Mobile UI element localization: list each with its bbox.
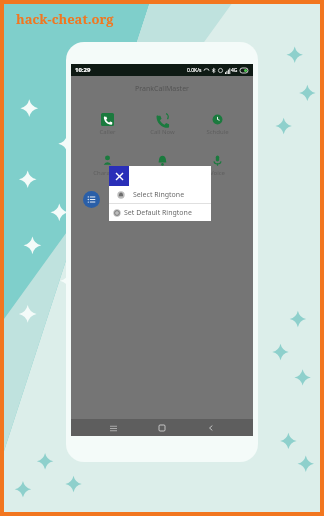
button[interactable]: Caller <box>79 111 135 138</box>
staticText: 10:29 <box>75 66 91 74</box>
button[interactable]: Home <box>155 421 169 435</box>
staticText: Caller <box>99 128 116 136</box>
button[interactable]: Back <box>204 421 218 435</box>
button[interactable]: Ringtone <box>135 152 190 179</box>
button[interactable]: Set Default Ringtone <box>109 204 211 221</box>
button[interactable]: Call log list <box>83 191 100 208</box>
button[interactable]: Select Ringtone <box>109 186 211 203</box>
staticText: 0.0K/s <box>187 67 202 74</box>
staticText: 4G <box>231 67 238 74</box>
staticText: PrankCallMaster <box>71 84 253 94</box>
button[interactable]: Character <box>79 152 135 179</box>
button[interactable]: Close <box>109 166 129 186</box>
staticText: Set Default Ringtone <box>124 208 192 218</box>
staticText: hack-cheat.org <box>16 10 114 28</box>
staticText: Select Ringtone <box>133 190 185 200</box>
staticText: Voice <box>210 169 225 177</box>
staticText: Schdule <box>206 128 229 136</box>
button[interactable]: Recent apps <box>106 421 120 435</box>
button[interactable]: Voice <box>190 152 245 179</box>
staticText: Character <box>93 169 121 177</box>
button[interactable]: Schdule <box>190 111 245 138</box>
staticText: Call Now <box>150 128 175 136</box>
button[interactable]: Call Now <box>135 111 190 138</box>
